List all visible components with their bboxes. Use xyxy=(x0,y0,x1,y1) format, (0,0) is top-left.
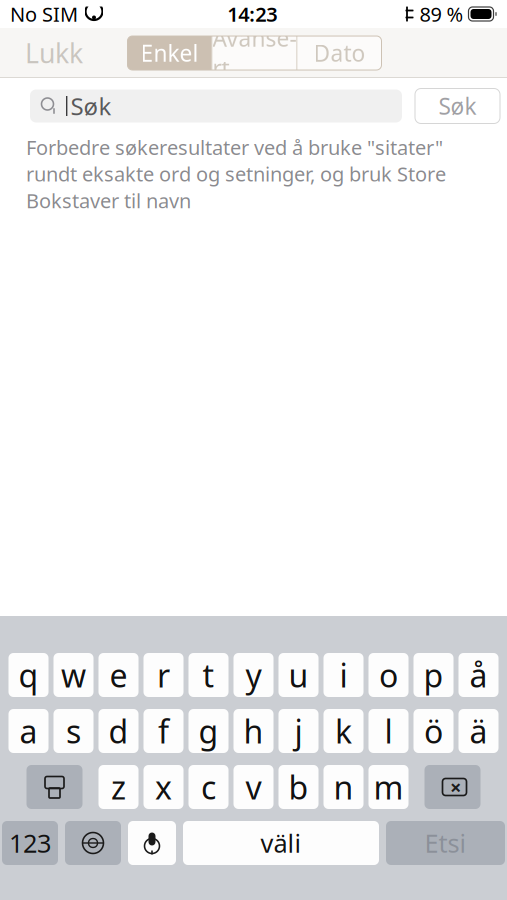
button[interactable]: o xyxy=(368,653,408,697)
button[interactable]: g xyxy=(188,709,228,753)
button[interactable]: y xyxy=(233,653,273,697)
staticText: n xyxy=(333,766,353,808)
staticText: l xyxy=(384,710,392,752)
button[interactable]: Lukk xyxy=(13,27,95,79)
button[interactable]: w xyxy=(53,653,93,697)
button[interactable]: s xyxy=(53,709,93,753)
button[interactable]: Dato xyxy=(297,36,381,70)
button[interactable]: f xyxy=(143,709,183,753)
button[interactable]: a xyxy=(8,709,48,753)
staticText: w xyxy=(61,654,86,696)
staticText: väli xyxy=(260,826,301,860)
button[interactable]: 123 xyxy=(2,821,58,865)
staticText: k xyxy=(335,710,352,752)
button[interactable]: ä xyxy=(458,709,498,753)
staticText: Lukk xyxy=(25,35,83,71)
button[interactable]: Enkel xyxy=(127,36,211,70)
staticText: r xyxy=(157,654,170,696)
button[interactable]: r xyxy=(143,653,183,697)
staticText: j xyxy=(294,710,302,752)
staticText: v xyxy=(245,766,261,808)
staticText: f xyxy=(158,710,169,752)
staticText: h xyxy=(243,710,263,752)
staticText: o xyxy=(379,654,398,696)
staticText: Dato xyxy=(313,38,365,68)
button[interactable]: Shift xyxy=(26,765,82,809)
staticText: c xyxy=(201,766,216,808)
button[interactable]: j xyxy=(278,709,318,753)
staticText: m xyxy=(373,766,403,808)
button[interactable]: Søk xyxy=(415,88,500,123)
button[interactable]: m xyxy=(368,765,408,809)
staticText: i xyxy=(339,654,347,696)
button[interactable]: x xyxy=(143,765,183,809)
staticText: q xyxy=(18,654,38,696)
button[interactable]: c xyxy=(188,765,228,809)
staticText: d xyxy=(108,710,128,752)
button[interactable]: e xyxy=(98,653,138,697)
staticText: s xyxy=(66,710,81,752)
button[interactable]: v xyxy=(233,765,273,809)
staticText: No SIM xyxy=(10,1,78,27)
button[interactable]: b xyxy=(278,765,318,809)
button[interactable]: Dictate xyxy=(128,821,176,865)
button[interactable]: z xyxy=(98,765,138,809)
button[interactable]: l xyxy=(368,709,408,753)
staticText: u xyxy=(288,654,308,696)
button[interactable]: t xyxy=(188,653,228,697)
staticText: Forbedre søkeresultater ved å bruke "sit… xyxy=(26,134,446,214)
staticText: x xyxy=(155,766,172,808)
button[interactable]: q xyxy=(8,653,48,697)
staticText: ö xyxy=(424,710,443,752)
button[interactable]: å xyxy=(458,653,498,697)
button[interactable]: Etsi xyxy=(386,821,505,865)
staticText: a xyxy=(19,710,37,752)
staticText: p xyxy=(423,654,443,696)
staticText: b xyxy=(288,766,308,808)
button[interactable]: p xyxy=(413,653,453,697)
button[interactable]: Delete xyxy=(424,765,480,809)
button[interactable]: ö xyxy=(413,709,453,753)
staticText: 123 xyxy=(9,826,51,860)
staticText: Enkel xyxy=(140,38,198,68)
button[interactable]: k xyxy=(323,709,363,753)
staticText: t xyxy=(202,654,214,696)
button[interactable]: n xyxy=(323,765,363,809)
staticText: Avansert xyxy=(212,23,296,83)
button[interactable]: h xyxy=(233,709,273,753)
staticText: z xyxy=(111,766,126,808)
staticText: Etsi xyxy=(424,826,466,860)
staticText: å xyxy=(469,654,487,696)
staticText: e xyxy=(109,654,127,696)
button[interactable]: väli xyxy=(183,821,379,865)
staticText: g xyxy=(198,710,218,752)
staticText: 89 % xyxy=(419,1,463,27)
button[interactable]: Avansert xyxy=(212,36,296,70)
staticText: 14:23 xyxy=(227,1,277,27)
staticText: y xyxy=(245,654,261,696)
button[interactable]: Søk xyxy=(30,89,402,122)
button[interactable]: i xyxy=(323,653,363,697)
button[interactable]: Next keyboard xyxy=(65,821,121,865)
staticText: × xyxy=(450,774,461,800)
staticText: Søk xyxy=(70,90,111,122)
staticText: Søk xyxy=(438,91,476,121)
staticText: ä xyxy=(469,710,487,752)
button[interactable]: d xyxy=(98,709,138,753)
button[interactable]: u xyxy=(278,653,318,697)
